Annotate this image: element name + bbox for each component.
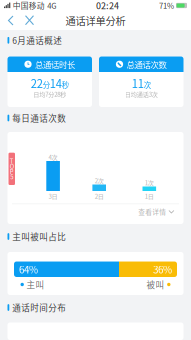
staticText: 秒 xyxy=(62,79,69,90)
staticText: 主叫 xyxy=(26,278,44,291)
staticText: 中国移动 xyxy=(13,0,45,11)
staticText: 2次 xyxy=(95,176,104,185)
staticText: 查看详情 xyxy=(138,207,166,217)
staticText: 主叫被叫占比 xyxy=(12,230,66,243)
staticText: P xyxy=(10,167,14,176)
button[interactable]: Close xyxy=(20,11,39,30)
staticText: 14 xyxy=(50,75,62,91)
staticText: 分 xyxy=(43,79,50,90)
staticText: 通话详单分析 xyxy=(65,13,125,28)
staticText: 日均通话3次 xyxy=(125,90,158,99)
staticText: 总通话时长 xyxy=(35,58,75,70)
staticText: 日均7分28秒 xyxy=(33,90,66,99)
staticText: 22 xyxy=(31,75,43,91)
staticText: 71% xyxy=(159,0,174,11)
staticText: 5 xyxy=(10,172,13,181)
staticText: 64% xyxy=(19,262,38,276)
staticText: O xyxy=(10,162,14,170)
staticText: 6月通话概述 xyxy=(12,34,62,46)
staticText: 通话时间分布 xyxy=(12,301,66,314)
staticText: 每日通话次数 xyxy=(12,112,66,124)
staticText: 36% xyxy=(153,262,172,276)
staticText: 次 xyxy=(144,79,151,90)
button[interactable]: 查看详情 xyxy=(135,205,177,219)
staticText: 3日 xyxy=(49,192,58,200)
staticText: 4G xyxy=(47,0,56,11)
staticText: 11 xyxy=(132,75,144,91)
staticText: 被叫 xyxy=(147,278,165,291)
staticText: 2日 xyxy=(95,192,104,200)
staticText: 1次 xyxy=(145,178,154,187)
button[interactable]: Top 5 xyxy=(8,153,15,185)
staticText: 4次 xyxy=(49,153,58,161)
staticText: 总通话次数 xyxy=(127,58,167,70)
staticText: 02:24 xyxy=(96,0,119,12)
staticText: T xyxy=(10,157,14,165)
staticText: 1日 xyxy=(145,192,154,200)
button[interactable]: Back xyxy=(2,11,20,30)
